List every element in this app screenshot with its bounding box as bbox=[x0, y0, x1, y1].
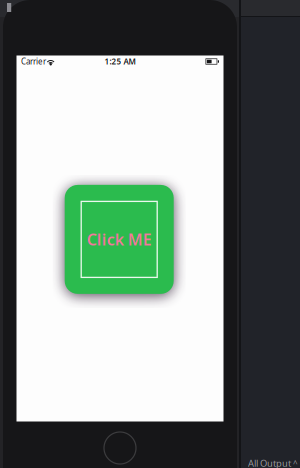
staticText: All Output bbox=[248, 457, 291, 468]
staticText: ^ bbox=[293, 458, 298, 468]
staticText: Click ME bbox=[87, 229, 152, 250]
staticText: 1:25 AM bbox=[104, 56, 135, 67]
button[interactable]: Click ME bbox=[65, 185, 174, 294]
staticText: Carrier bbox=[21, 56, 46, 67]
